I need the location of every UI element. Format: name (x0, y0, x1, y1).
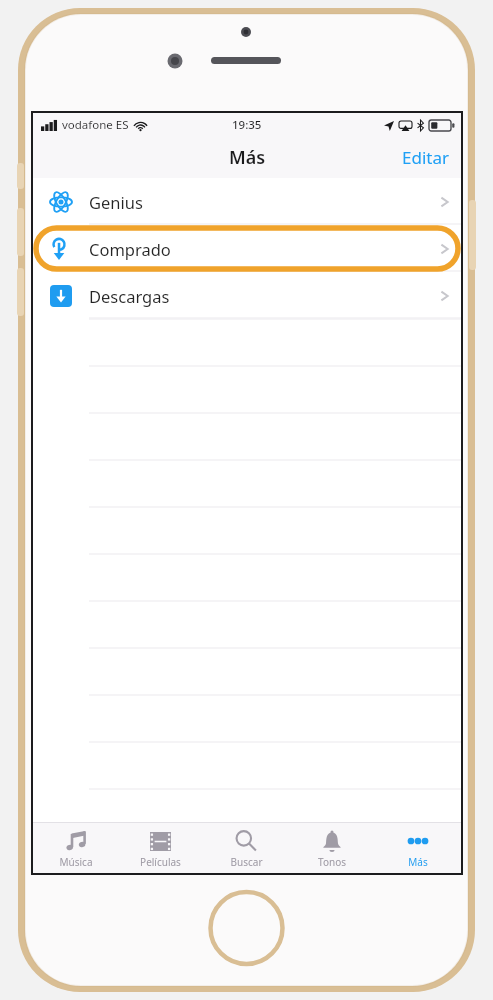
staticText: 19:35 (232, 117, 262, 133)
staticText: Comprado (89, 238, 171, 260)
staticText: Genius (89, 191, 143, 213)
button[interactable]: Descargas (33, 272, 461, 319)
button[interactable]: Tonos (289, 823, 375, 873)
button[interactable]: Genius (33, 178, 461, 225)
button[interactable]: Música (33, 823, 118, 873)
staticText: Descargas (89, 285, 170, 307)
staticText: Buscar (230, 855, 263, 869)
staticText: Música (59, 855, 93, 869)
button[interactable]: Comprado (33, 225, 461, 272)
staticText: Tonos (318, 855, 346, 869)
staticText: Editar (402, 146, 449, 169)
button[interactable]: Buscar (203, 823, 289, 873)
staticText: Películas (140, 855, 181, 869)
button[interactable]: Películas (118, 823, 203, 873)
button[interactable]: Más (375, 823, 461, 873)
staticText: Más (408, 855, 428, 869)
button[interactable]: Editar (390, 140, 461, 175)
staticText: vodafone ES (62, 117, 129, 133)
staticText: Más (229, 145, 266, 170)
